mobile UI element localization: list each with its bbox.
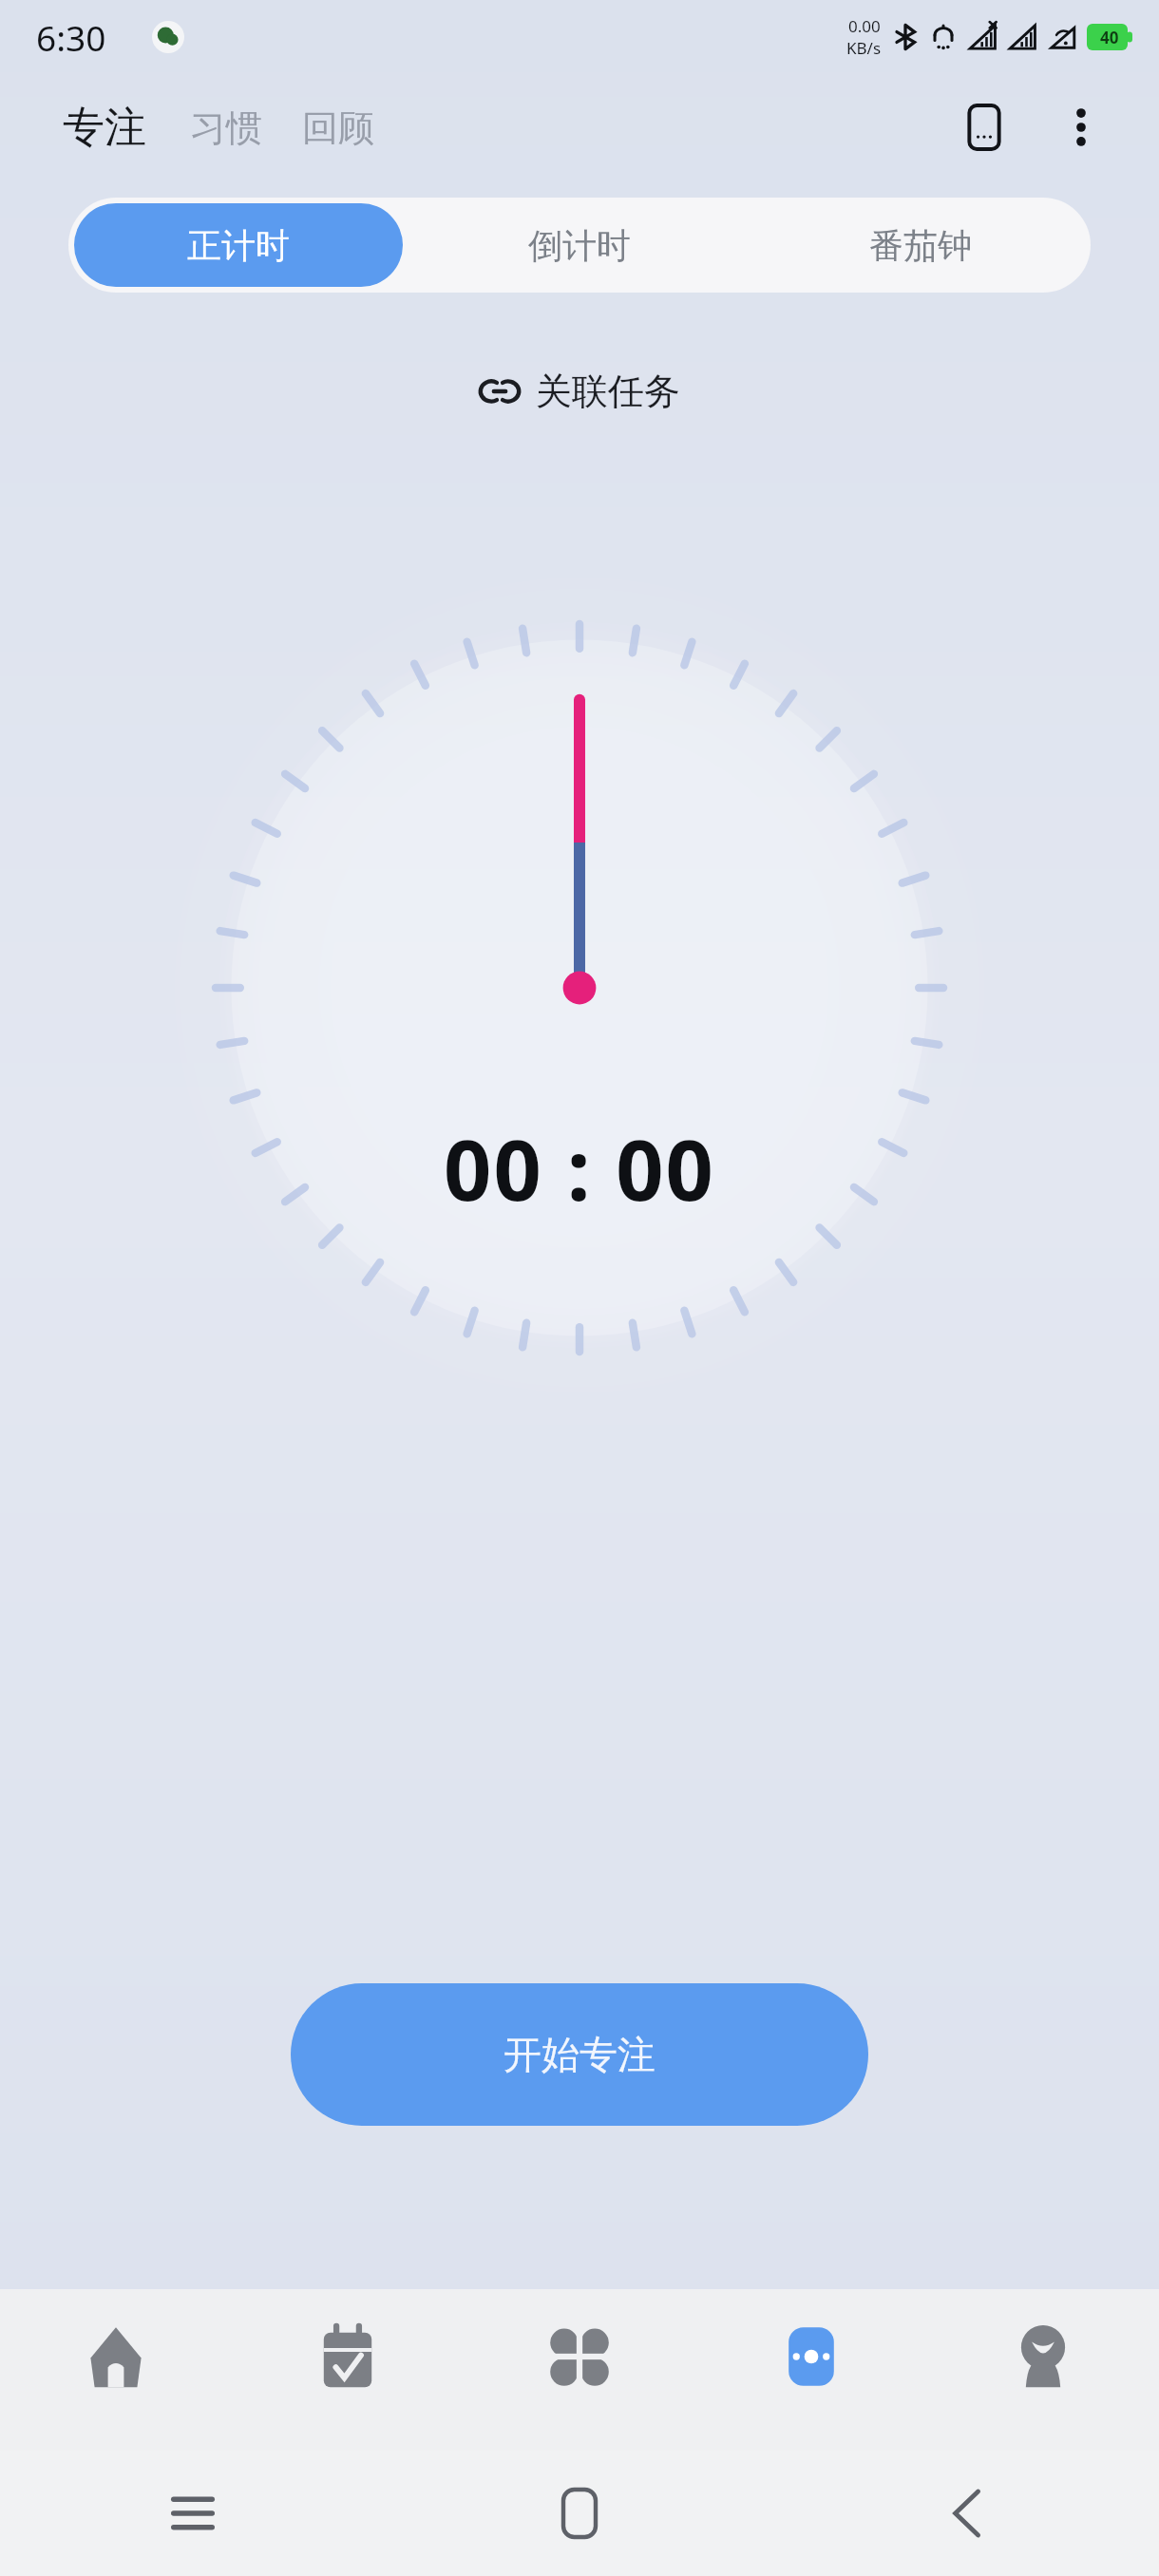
staticText: 习惯 bbox=[190, 105, 262, 151]
button[interactable]: Recents bbox=[0, 2451, 386, 2576]
staticText: 0.00 bbox=[848, 15, 881, 37]
button[interactable]: 倒计时 bbox=[414, 203, 744, 287]
staticText: 00 : 00 bbox=[444, 1111, 715, 1225]
staticText: 倒计时 bbox=[528, 224, 631, 267]
staticText: 关联任务 bbox=[536, 369, 680, 414]
button[interactable]: 回顾 bbox=[296, 96, 380, 161]
staticText: 开始专注 bbox=[503, 2031, 655, 2078]
button[interactable]: 专注 bbox=[57, 92, 152, 163]
staticText: 正计时 bbox=[187, 224, 290, 267]
button[interactable]: 关联任务 bbox=[460, 357, 699, 426]
staticText: 回顾 bbox=[302, 105, 374, 151]
staticText: 番茄钟 bbox=[869, 224, 972, 267]
staticText: 40 bbox=[1100, 27, 1119, 48]
staticText: KB/s bbox=[846, 37, 882, 59]
button[interactable]: Notes bbox=[944, 87, 1024, 167]
button[interactable]: Profile bbox=[927, 2289, 1159, 2451]
button[interactable]: Focus bbox=[695, 2289, 927, 2451]
button[interactable]: Habits bbox=[464, 2289, 695, 2451]
button[interactable]: More options bbox=[1041, 87, 1121, 167]
staticText: 6:30 bbox=[36, 13, 106, 61]
button[interactable]: Home bbox=[0, 2289, 232, 2451]
button[interactable]: 正计时 bbox=[74, 203, 403, 287]
button[interactable]: 番茄钟 bbox=[755, 203, 1085, 287]
button[interactable]: 习惯 bbox=[184, 96, 268, 161]
staticText: 专注 bbox=[63, 102, 146, 154]
button[interactable]: Tasks bbox=[232, 2289, 464, 2451]
button[interactable]: Back bbox=[772, 2451, 1159, 2576]
button[interactable]: Home bbox=[386, 2451, 772, 2576]
button[interactable]: 开始专注 bbox=[291, 1983, 868, 2126]
